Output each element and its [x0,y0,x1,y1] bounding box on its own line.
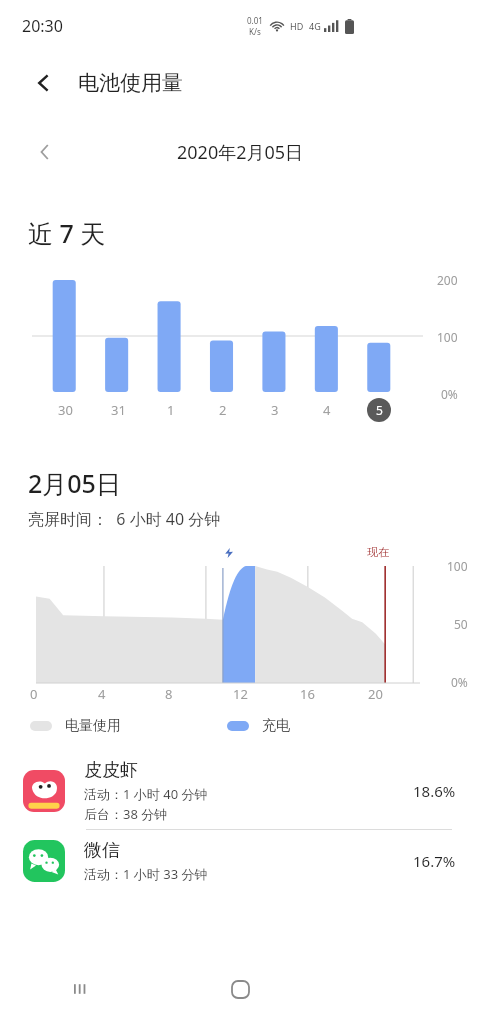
staticText: 20:30 [22,15,63,37]
staticText: 4 [323,401,331,419]
button[interactable]: 2 [211,398,235,422]
button[interactable]: 3 [263,398,287,422]
staticText: 2月05日 [28,466,121,500]
staticText: 活动：1 小时 40 分钟 [84,785,208,803]
staticText: 4 [98,685,106,703]
button[interactable]: 31 [106,398,130,422]
staticText: 0% [451,674,468,690]
staticText: 18.6% [413,781,456,801]
staticText: 0% [441,386,458,402]
staticText: 微信 [84,839,120,862]
staticText: K/s [249,26,261,37]
staticText: 电量使用 [65,717,121,735]
staticText: 活动：1 小时 33 分钟 [84,865,208,883]
staticText: 亮屏时间： 6 小时 40 分钟 [28,508,221,530]
staticText: 充电 [262,717,290,735]
staticText: 16.7% [413,851,456,871]
button[interactable]: 皮皮虾 [0,753,480,829]
button[interactable]: 30 [53,398,77,422]
button[interactable]: 1 [159,398,183,422]
staticText: 12 [233,685,248,703]
button[interactable]: 电量使用 [30,717,121,735]
button[interactable]: 4 [315,398,339,422]
staticText: 16 [300,685,315,703]
staticText: 0.01 [247,15,263,26]
staticText: 近 7 天 [28,216,106,250]
staticText: 4G [309,20,321,32]
staticText: 200 [437,272,458,288]
button[interactable]: 充电 [227,717,290,735]
button[interactable]: Previous day [28,135,62,169]
staticText: 30 [58,401,73,419]
staticText: 3 [271,401,279,419]
staticText: 2020年2月05日 [177,140,304,165]
staticText: 100 [437,329,458,345]
button[interactable]: 5 [367,398,391,422]
button[interactable]: Back [24,63,64,103]
staticText: 50 [454,616,468,632]
staticText: 1 [167,401,175,419]
button[interactable]: Home [160,965,320,1013]
button[interactable]: 微信 [0,830,480,892]
staticText: 8 [165,685,173,703]
staticText: 5 [376,402,383,418]
staticText: 电池使用量 [78,70,183,96]
button[interactable]: Recents [0,965,160,1013]
staticText: 31 [111,401,126,419]
staticText: 2 [219,401,227,419]
staticText: 20 [368,685,383,703]
staticText: 0 [30,685,38,703]
staticText: 100 [447,558,468,574]
staticText: 现在 [367,545,389,559]
staticText: 皮皮虾 [84,759,138,782]
staticText: 后台：38 分钟 [84,805,168,823]
staticText: HD [290,20,304,32]
